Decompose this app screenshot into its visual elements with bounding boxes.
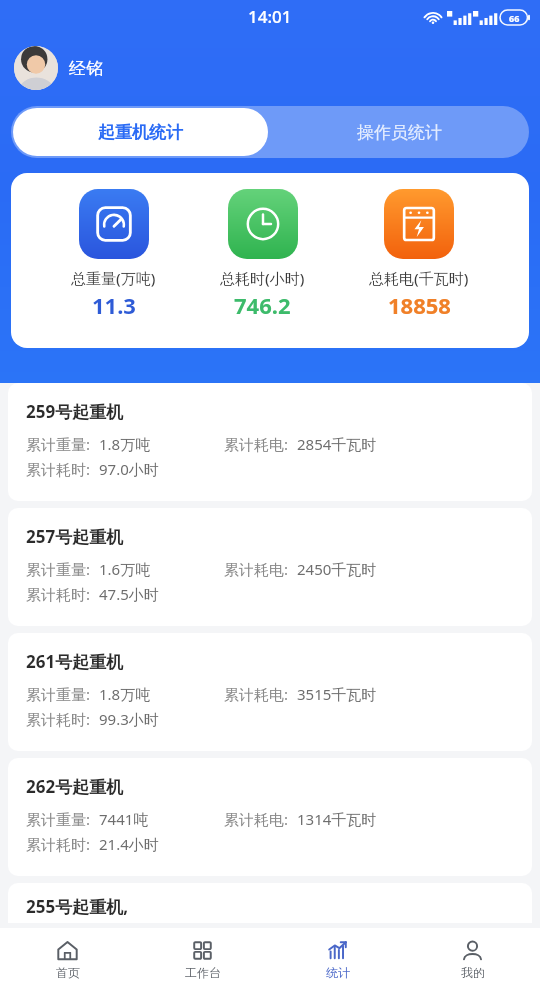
button[interactable]: 工作台 — [135, 928, 270, 990]
button[interactable]: 首页 — [0, 928, 135, 990]
button[interactable]: 261号起重机 — [8, 633, 532, 751]
staticText: 起重机统计 — [98, 122, 183, 143]
staticText: 97.0小时 — [99, 459, 159, 479]
button[interactable]: 总耗时(小时) — [216, 189, 309, 320]
staticText: 累计耗电: — [224, 809, 289, 829]
staticText: 操作员统计 — [357, 122, 442, 143]
staticText: 21.4小时 — [99, 834, 159, 854]
staticText: 47.5小时 — [99, 584, 159, 604]
staticText: 累计耗时: — [26, 834, 91, 854]
button[interactable]: 259号起重机 — [8, 383, 532, 501]
button[interactable]: 操作员统计 — [270, 106, 529, 158]
staticText: 统计 — [326, 965, 350, 980]
staticText: 259号起重机 — [26, 400, 124, 423]
button[interactable]: 257号起重机 — [8, 508, 532, 626]
button[interactable]: 总重量(万吨) — [67, 189, 160, 320]
staticText: 2854千瓦时 — [297, 434, 377, 454]
staticText: 累计重量: — [26, 434, 91, 454]
staticText: 1314千瓦时 — [297, 809, 377, 829]
staticText: 1.6万吨 — [99, 559, 151, 579]
staticText: 总耗电(千瓦时) — [369, 268, 469, 288]
staticText: 总重量(万吨) — [71, 268, 156, 288]
button[interactable]: 总耗电(千瓦时) — [365, 189, 473, 320]
button[interactable]: 262号起重机 — [8, 758, 532, 876]
staticText: 总耗时(小时) — [220, 268, 305, 288]
staticText: 11.3 — [92, 290, 136, 320]
staticText: 257号起重机 — [26, 525, 124, 548]
staticText: 累计耗时: — [26, 584, 91, 604]
staticText: 262号起重机 — [26, 775, 124, 798]
staticText: 7441吨 — [99, 809, 149, 829]
staticText: 我的 — [461, 965, 485, 980]
staticText: 66 — [509, 12, 520, 24]
staticText: 首页 — [56, 965, 80, 980]
staticText: 3515千瓦时 — [297, 684, 377, 704]
staticText: 99.3小时 — [99, 709, 159, 729]
button[interactable]: 经铭 — [0, 42, 540, 94]
staticText: 1.8万吨 — [99, 684, 151, 704]
staticText: 18858 — [388, 290, 451, 320]
button[interactable]: 起重机统计 — [13, 108, 268, 156]
staticText: 累计耗时: — [26, 459, 91, 479]
staticText: 1.8万吨 — [99, 434, 151, 454]
staticText: 746.2 — [234, 290, 291, 320]
staticText: 经铭 — [69, 58, 103, 79]
staticText: 累计耗电: — [224, 559, 289, 579]
button[interactable]: 统计 — [270, 928, 405, 990]
staticText: 255号起重机, — [26, 895, 129, 918]
staticText: 工作台 — [185, 965, 221, 980]
staticText: 261号起重机 — [26, 650, 124, 673]
staticText: 累计重量: — [26, 684, 91, 704]
staticText: 累计耗电: — [224, 434, 289, 454]
button[interactable]: 我的 — [405, 928, 540, 990]
staticText: 累计耗时: — [26, 709, 91, 729]
button[interactable]: 255号起重机, — [8, 883, 532, 923]
staticText: 14:01 — [248, 5, 292, 28]
staticText: 2450千瓦时 — [297, 559, 377, 579]
staticText: 累计重量: — [26, 809, 91, 829]
staticText: 累计耗电: — [224, 684, 289, 704]
staticText: 累计重量: — [26, 559, 91, 579]
